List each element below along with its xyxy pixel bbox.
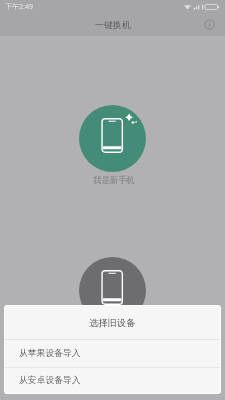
- staticText: 从苹果设备导入: [19, 348, 81, 359]
- staticText: 选择旧设备: [89, 317, 136, 329]
- staticText: 一键换机: [95, 19, 131, 30]
- button[interactable]: Info: [199, 14, 220, 35]
- staticText: 我是新手机: [93, 175, 135, 186]
- button[interactable]: 我是新手机: [79, 105, 146, 172]
- staticText: 从安卓设备导入: [19, 375, 81, 386]
- button[interactable]: 我是旧手机: [79, 257, 146, 324]
- staticText: 下午2:49: [5, 2, 33, 12]
- button[interactable]: 从苹果设备导入: [5, 340, 220, 367]
- button[interactable]: 从安卓设备导入: [5, 368, 220, 393]
